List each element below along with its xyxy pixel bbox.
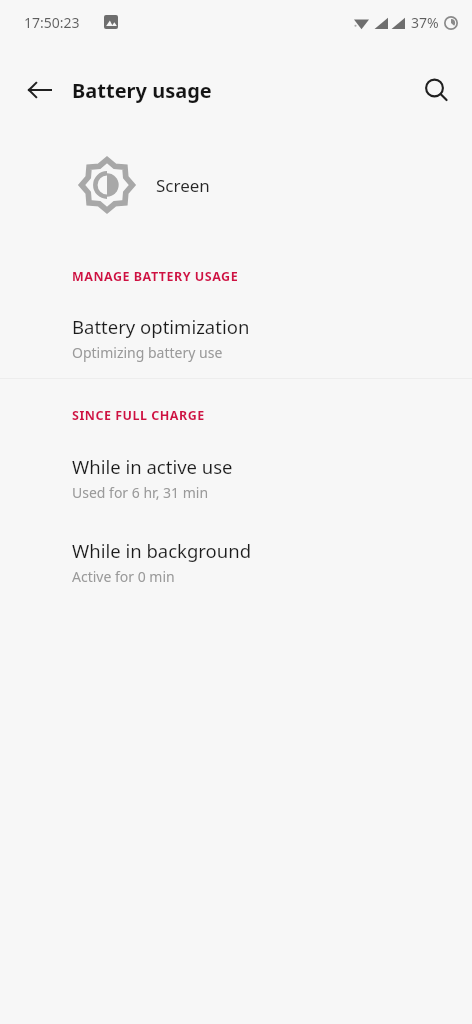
button[interactable]: While in active use [0,440,472,512]
button[interactable]: Back [14,64,66,116]
staticText: While in active use [72,454,233,479]
staticText: Screen [156,174,210,197]
staticText: Battery usage [72,77,212,104]
staticText: Active for 0 min [72,567,175,586]
staticText: 17:50:23 [24,13,80,32]
button[interactable]: Search [410,64,462,116]
staticText: Used for 6 hr, 31 min [72,483,209,502]
staticText: SINCE FULL CHARGE [72,407,205,424]
staticText: Battery optimization [72,314,250,339]
staticText: 37% [411,13,439,32]
staticText: While in background [72,538,252,563]
staticText: Optimizing battery use [72,343,223,362]
button[interactable]: Screen [0,148,472,222]
staticText: MANAGE BATTERY USAGE [72,268,239,285]
button[interactable]: Battery optimization [0,300,472,372]
button[interactable]: While in background [0,524,472,596]
